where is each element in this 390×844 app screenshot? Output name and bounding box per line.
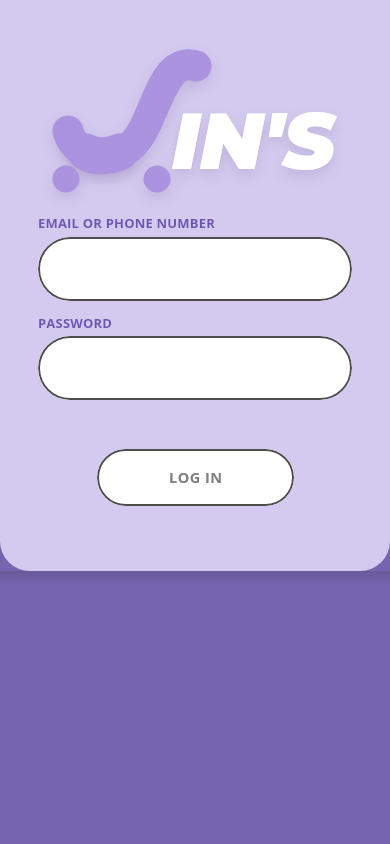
button[interactable]: [38, 336, 352, 400]
staticText: EMAIL OR PHONE NUMBER: [38, 214, 215, 232]
staticText: IN'S: [172, 93, 336, 189]
button[interactable]: LOG IN: [97, 449, 294, 506]
staticText: IN'S: [172, 99, 336, 195]
button[interactable]: [38, 237, 352, 301]
staticText: PASSWORD: [38, 314, 113, 332]
staticText: LOG IN: [169, 468, 223, 488]
